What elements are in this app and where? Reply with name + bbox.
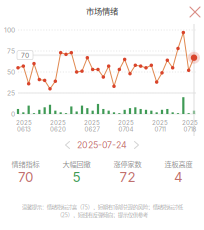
- staticText: 2025: [50, 119, 66, 126]
- button[interactable]: 情绪指标: [0, 159, 51, 185]
- button[interactable]: 涨停家数: [102, 159, 153, 185]
- staticText: 连板高度: [164, 159, 192, 169]
- staticText: 涨停家数: [113, 159, 141, 169]
- staticText: 0704: [118, 125, 133, 133]
- staticText: 70: [21, 51, 29, 59]
- staticText: 2025: [118, 119, 134, 126]
- staticText: 0711: [154, 125, 165, 133]
- staticText: 0627: [84, 125, 99, 133]
- staticText: 25: [7, 89, 15, 97]
- button[interactable]: 连板高度: [153, 159, 204, 185]
- staticText: 5: [72, 169, 80, 185]
- staticText: 2025-07-24: [77, 140, 127, 150]
- staticText: 50: [7, 68, 15, 76]
- staticText: 0620: [50, 125, 66, 133]
- staticText: 市场情绪: [86, 5, 118, 17]
- staticText: 0718: [183, 125, 196, 133]
- staticText: 2025: [152, 119, 168, 126]
- staticText: 4: [174, 169, 183, 185]
- button[interactable]: 大幅回撤: [51, 159, 102, 185]
- staticText: 0613: [17, 125, 31, 133]
- staticText: 2025: [16, 119, 32, 126]
- button[interactable]: 2025-07-24: [57, 138, 147, 152]
- staticText: 情绪指标: [11, 159, 39, 169]
- staticText: 大幅回撤: [62, 159, 90, 169]
- staticText: 100: [4, 26, 15, 34]
- staticText: 72: [119, 169, 135, 185]
- staticText: 0: [11, 110, 15, 118]
- staticText: 2025: [182, 119, 198, 126]
- staticText: 2025: [84, 119, 100, 126]
- staticText: 温馨提示：情绪指标过高（75），短期有顶部兑现的风险；情绪指标过低（25），短线…: [21, 203, 182, 219]
- staticText: 70: [18, 169, 33, 185]
- staticText: 75: [7, 47, 15, 55]
- button[interactable]: Close: [188, 5, 202, 19]
